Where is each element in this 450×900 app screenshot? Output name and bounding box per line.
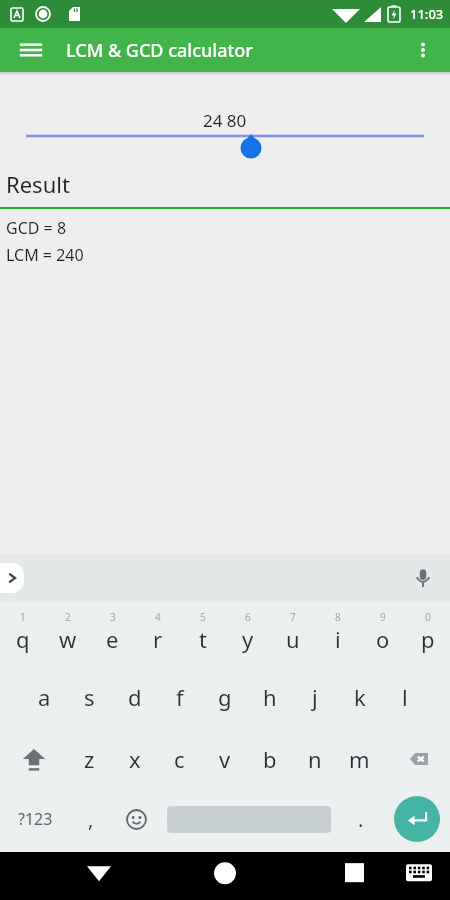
staticText: 5 [200,610,206,624]
staticText: j [312,682,318,712]
staticText: c [174,744,185,774]
staticText: d [128,682,142,712]
staticText: r [153,624,163,654]
staticText: n [308,744,322,774]
staticText: GCD = 8 [6,217,67,239]
staticText: z [84,744,95,774]
staticText: i [335,624,341,654]
staticText: 9 [380,610,386,624]
staticText: a [38,682,51,712]
button[interactable]: . [338,790,384,848]
button[interactable]: j [292,666,337,728]
staticText: h [263,682,277,712]
staticText: v [219,744,231,774]
staticText: , [88,806,94,833]
button[interactable]: z [67,728,112,790]
staticText: LCM = 240 [6,244,84,266]
staticText: u [286,624,300,654]
button[interactable]: a [22,666,67,728]
button[interactable]: c [157,728,202,790]
button[interactable]: Emoji [112,790,160,848]
staticText: p [421,624,435,654]
staticText: e [106,624,119,654]
staticText: f [176,682,184,712]
staticText: l [402,682,408,712]
button[interactable]: d [112,666,157,728]
button[interactable]: v [202,728,247,790]
staticText: m [349,744,370,774]
button[interactable]: , [70,790,112,848]
staticText: t [199,624,207,654]
button[interactable]: m [337,728,382,790]
button[interactable]: 8 [315,606,360,666]
button[interactable]: ?123 [0,790,70,848]
button[interactable]: g [202,666,247,728]
staticText: 1 [20,610,26,624]
button[interactable]: x [112,728,157,790]
staticText: 2 [65,610,71,624]
button[interactable]: s [67,666,112,728]
staticText: w [59,624,77,654]
staticText: LCM & GCD calculator [66,38,253,63]
staticText: k [354,682,366,712]
button[interactable]: Open navigation drawer [10,29,52,71]
staticText: o [376,624,390,654]
button[interactable]: 4 [135,606,180,666]
button[interactable]: 0 [405,606,450,666]
staticText: Result [6,169,70,199]
staticText: 7 [290,610,296,624]
staticText: x [129,744,141,774]
staticText: ?123 [18,808,53,830]
button[interactable]: n [292,728,337,790]
button[interactable]: 24 80 [0,109,450,157]
staticText: g [218,682,232,712]
button[interactable]: 6 [225,606,270,666]
button[interactable]: 2 [45,606,90,666]
button[interactable]: Voice input [406,561,440,595]
button[interactable]: l [382,666,427,728]
staticText: s [84,682,95,712]
button[interactable]: Enter [384,790,450,848]
button[interactable]: Expand suggestions [0,563,24,593]
staticText: q [16,624,30,654]
staticText: . [358,806,364,833]
staticText: 0 [425,610,431,624]
staticText: 8 [335,610,341,624]
staticText: 4 [155,610,161,624]
staticText: 6 [245,610,251,624]
staticText: 3 [110,610,116,624]
button[interactable]: 9 [360,606,405,666]
staticText: b [263,744,277,774]
staticText: y [242,624,254,654]
button[interactable]: Backspace [382,728,450,790]
button[interactable]: 5 [180,606,225,666]
staticText: 11:03 [410,5,444,23]
button[interactable]: 7 [270,606,315,666]
button[interactable]: b [247,728,292,790]
button[interactable]: Space [160,790,338,848]
button[interactable]: k [337,666,382,728]
button[interactable]: h [247,666,292,728]
staticText: 24 80 [203,109,247,132]
button[interactable]: f [157,666,202,728]
button[interactable]: 1 [0,606,45,666]
button[interactable]: More options [402,29,444,71]
button[interactable]: 3 [90,606,135,666]
button[interactable]: Shift [0,728,67,790]
